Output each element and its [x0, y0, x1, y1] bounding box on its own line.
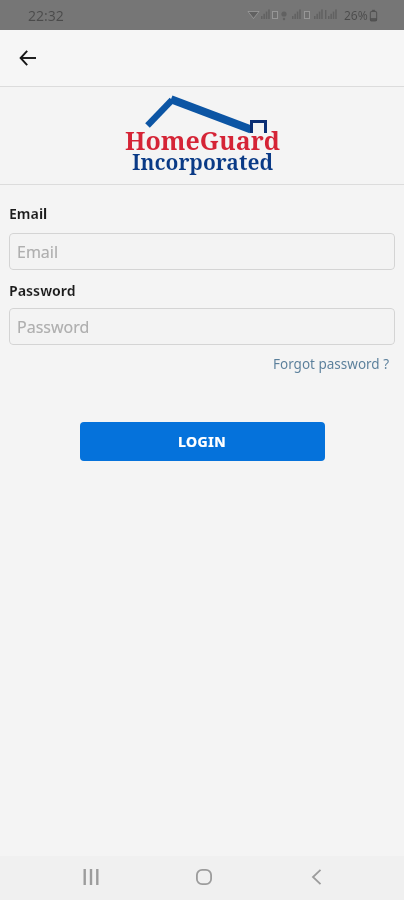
staticText: 22:32 — [28, 6, 64, 25]
staticText: HomeGuard — [125, 123, 281, 157]
button[interactable]: Password — [9, 308, 395, 345]
button[interactable]: Forgot password ? — [271, 351, 395, 377]
staticText: Email — [9, 204, 48, 223]
button[interactable]: LOGIN — [80, 422, 325, 461]
staticText: Password — [9, 281, 76, 300]
staticText: Password — [17, 316, 90, 338]
button[interactable]: Back — [293, 857, 340, 897]
staticText: Email — [17, 241, 59, 263]
staticText: LOGIN — [178, 432, 227, 451]
staticText: 26% — [344, 7, 368, 23]
button[interactable]: Back — [8, 38, 48, 78]
staticText: Incorporated — [132, 148, 274, 177]
staticText: Forgot password ? — [273, 355, 390, 373]
button[interactable]: Recent apps — [68, 857, 115, 897]
button[interactable]: Email — [9, 233, 395, 270]
button[interactable]: Home — [180, 857, 227, 897]
